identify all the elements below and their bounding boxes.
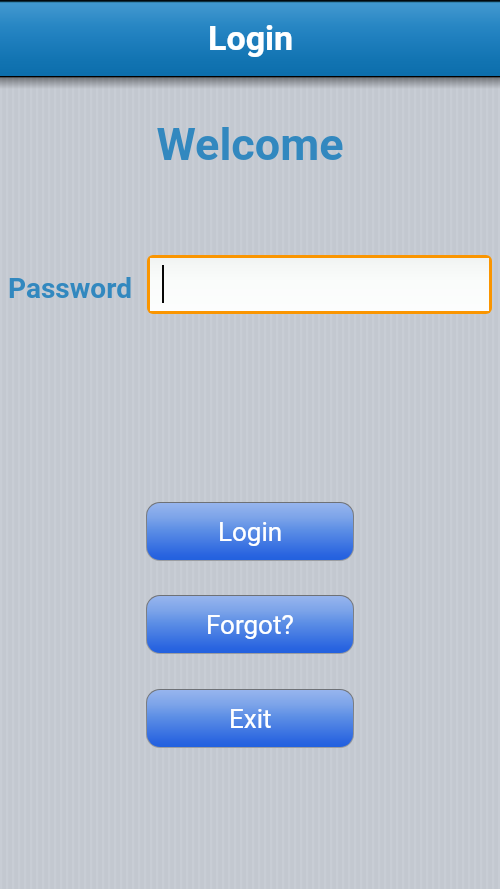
button[interactable] [150, 258, 489, 311]
staticText: Forgot? [206, 610, 294, 640]
staticText: Welcome [0, 118, 500, 171]
staticText: Password [8, 272, 132, 305]
button[interactable]: Exit [147, 690, 353, 747]
staticText: Exit [229, 704, 272, 734]
staticText: Login [208, 18, 294, 58]
staticText: Login [218, 517, 283, 547]
button[interactable]: Forgot? [147, 596, 353, 653]
button[interactable]: Login [147, 503, 353, 560]
